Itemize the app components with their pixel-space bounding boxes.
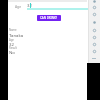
staticText: 32 xyxy=(9,41,14,47)
button[interactable]: Power xyxy=(91,0,97,4)
staticText: 32 xyxy=(27,3,32,9)
button[interactable]: Volume down xyxy=(91,11,97,17)
staticText: Tanaka xyxy=(9,32,24,38)
staticText: CAN DRINK? xyxy=(40,16,58,20)
staticText: Name xyxy=(9,28,17,32)
button[interactable]: Back xyxy=(91,48,97,54)
button[interactable]: CAN DRINK? xyxy=(37,15,61,21)
button[interactable]: Rotate left xyxy=(91,19,97,25)
button[interactable]: Screenshot xyxy=(91,34,97,40)
staticText: Age xyxy=(9,38,14,42)
staticText: Age xyxy=(15,4,21,8)
button[interactable]: Rotate right xyxy=(91,27,97,33)
button[interactable]: Zoom in xyxy=(91,41,97,47)
staticText: Result xyxy=(9,46,17,50)
staticText: No xyxy=(9,49,15,55)
button[interactable]: Volume up xyxy=(91,4,97,10)
